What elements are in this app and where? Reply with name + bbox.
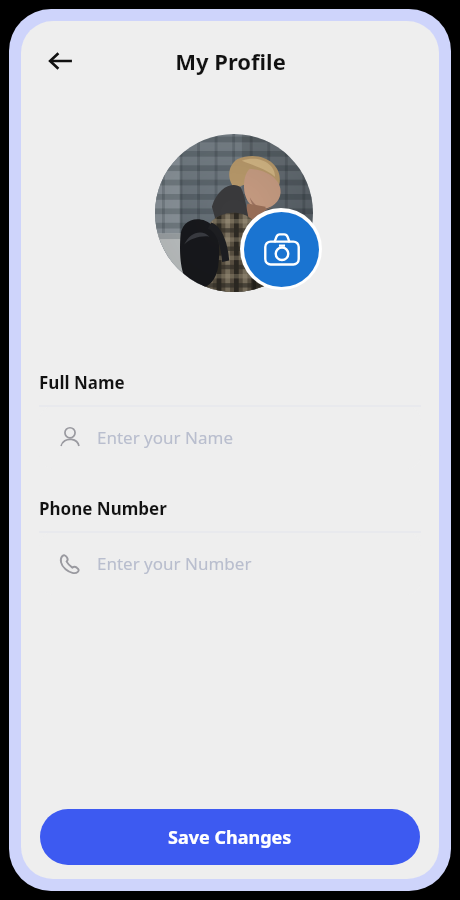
staticText: My Profile	[175, 46, 286, 76]
staticText: Save Changes	[168, 825, 292, 850]
staticText: Full Name	[39, 371, 125, 394]
button[interactable]: Enter your Name	[39, 406, 421, 469]
staticText: Enter your Number	[97, 552, 252, 575]
staticText: Phone Number	[39, 497, 167, 520]
button[interactable]: Back	[35, 35, 87, 87]
button[interactable]: Change Password	[40, 875, 420, 879]
button[interactable]: Enter your Number	[39, 532, 421, 595]
button[interactable]: Change photo	[240, 208, 322, 290]
staticText: Enter your Name	[97, 426, 233, 449]
button[interactable]: Save Changes	[40, 809, 420, 865]
button[interactable]: Profile photo	[155, 134, 313, 292]
